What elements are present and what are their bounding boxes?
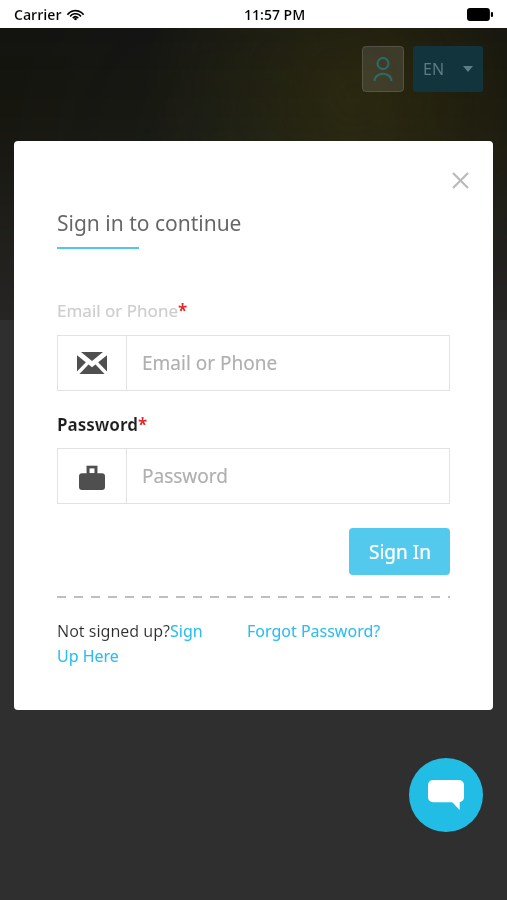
staticText: Password* <box>57 413 148 436</box>
staticText: Email or Phone <box>142 350 278 376</box>
staticText: Sign in to continue <box>57 209 242 238</box>
button[interactable]: Email or Phone <box>57 335 450 391</box>
staticText: Not signed up?Sign Up Here <box>57 620 227 666</box>
button[interactable]: Forgot Password? <box>247 620 381 642</box>
staticText: EN <box>423 58 445 80</box>
staticText: Sign In <box>369 539 431 565</box>
staticText: 11:57 PM <box>244 5 306 24</box>
button[interactable]: Not signed up?Sign Up Here <box>57 620 227 666</box>
button[interactable]: EN <box>413 46 483 92</box>
button[interactable]: Sign In <box>349 528 450 575</box>
button[interactable]: Account <box>362 46 404 92</box>
staticText: Password <box>142 463 228 489</box>
button[interactable]: Chat <box>409 758 483 832</box>
staticText: Forgot Password? <box>247 620 381 642</box>
button[interactable]: Close <box>443 163 477 197</box>
staticText: Carrier <box>14 5 62 24</box>
staticText: Email or Phone* <box>57 299 188 322</box>
button[interactable]: Password <box>57 448 450 504</box>
